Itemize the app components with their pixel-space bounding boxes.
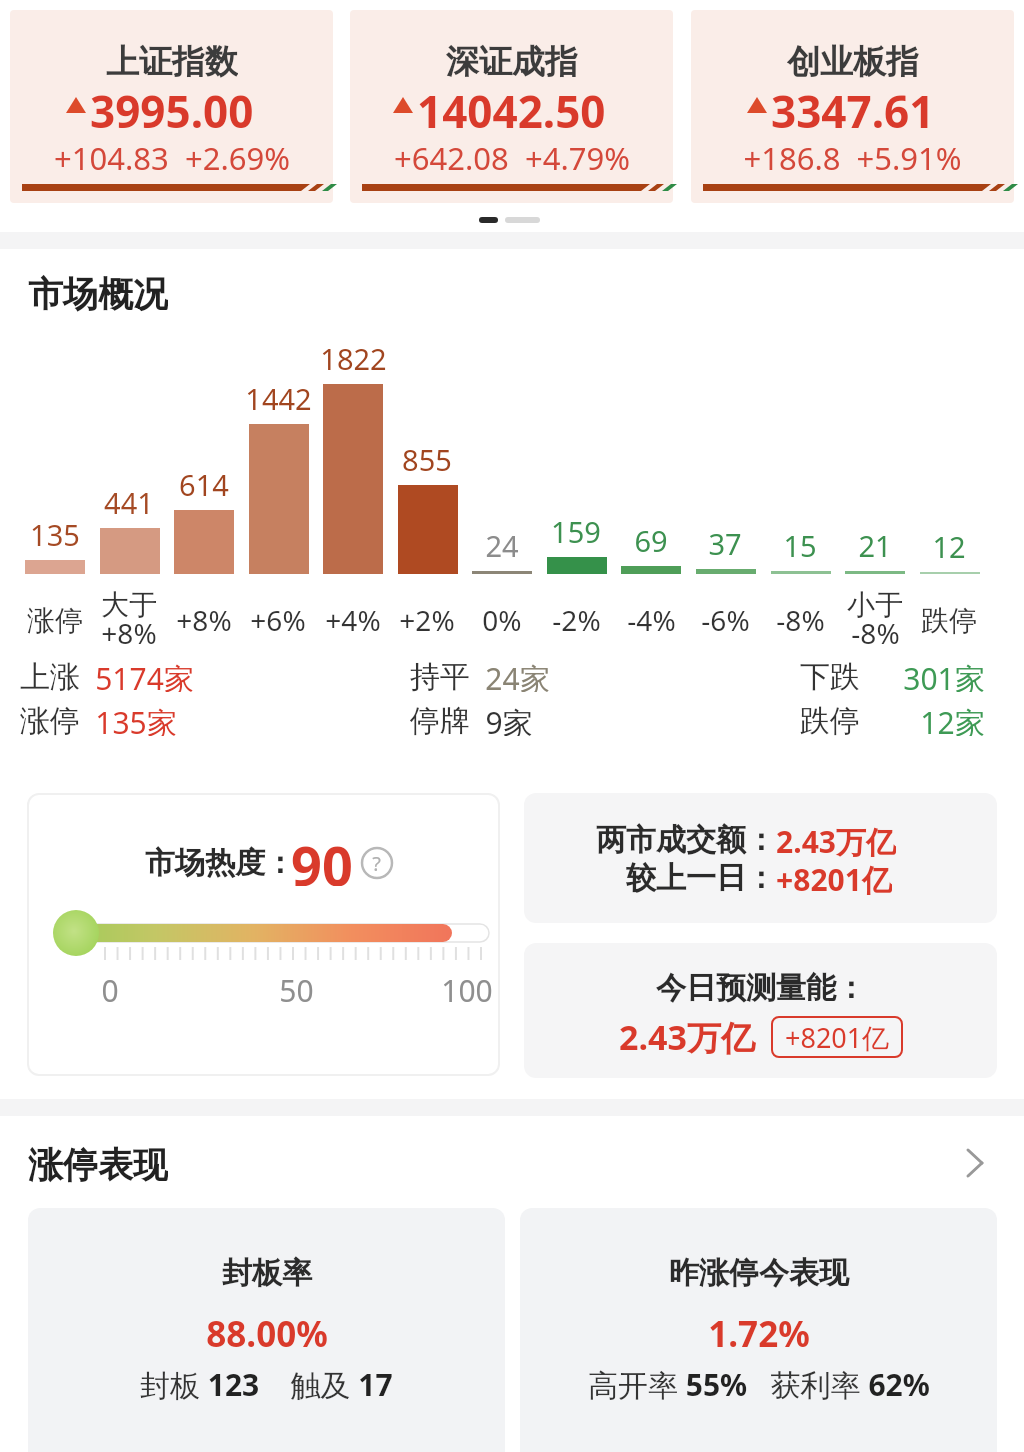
staticText: 1822 <box>320 339 387 375</box>
staticText: ? <box>372 850 381 877</box>
staticText: 市场概况 <box>28 272 168 312</box>
staticText: 封板率 <box>222 1254 312 1292</box>
button[interactable]: 深证成指 <box>350 10 673 203</box>
staticText: +186.8 +5.91% <box>743 137 962 173</box>
staticText: +104.83 +2.69% <box>54 137 290 173</box>
staticText: 159 <box>551 512 601 548</box>
staticText: 停牌 <box>410 702 470 736</box>
staticText: 涨停 <box>27 603 83 638</box>
staticText: 2.43万亿 <box>776 821 896 857</box>
staticText: 1442 <box>245 379 312 415</box>
button[interactable]: 创业板指 <box>691 10 1014 203</box>
staticText: 12 <box>932 527 966 563</box>
staticText: 0 <box>101 970 119 1006</box>
staticText: 创业板指 <box>787 41 919 81</box>
staticText: +8% <box>176 601 232 639</box>
staticText: 3347.61 <box>771 81 935 129</box>
button[interactable]: 市场热度： <box>27 793 500 1076</box>
staticText: -4% <box>627 601 676 639</box>
staticText: 涨停表现 <box>28 1143 168 1183</box>
staticText: 持平 <box>410 658 470 692</box>
staticText: 高开率 55% 获利率 62% <box>588 1364 930 1404</box>
staticText: +4% <box>325 601 381 639</box>
staticText: 135家 <box>95 702 177 736</box>
staticText: 24家 <box>485 658 550 692</box>
staticText: +8% <box>101 614 157 650</box>
staticText: -6% <box>701 601 750 639</box>
staticText: 14042.50 <box>417 81 606 129</box>
staticText: 135 <box>30 515 80 551</box>
staticText: 21 <box>858 526 892 562</box>
button[interactable] <box>962 1146 988 1180</box>
staticText: 2.43万亿 <box>619 1014 755 1060</box>
staticText: 441 <box>104 483 154 519</box>
staticText: 90 <box>291 828 353 886</box>
staticText: +642.08 +4.79% <box>394 137 630 173</box>
staticText: 50 <box>279 970 314 1006</box>
staticText: 两市成交额： <box>596 821 776 857</box>
staticText: +2% <box>399 601 455 639</box>
button[interactable]: 两市成交额： <box>524 793 997 923</box>
staticText: -8% <box>851 614 900 650</box>
staticText: 12家 <box>920 702 985 736</box>
staticText: 小于 <box>847 587 903 622</box>
staticText: 15 <box>783 526 817 562</box>
staticText: 0% <box>482 601 522 639</box>
staticText: 今日预测量能： <box>656 969 866 1007</box>
staticText: 跌停 <box>921 603 977 638</box>
staticText: 封板 123 触及 17 <box>140 1364 393 1404</box>
staticText: 9家 <box>485 702 533 736</box>
staticText: -8% <box>776 601 825 639</box>
staticText: +8201亿 <box>776 859 892 895</box>
staticText: 深证成指 <box>446 41 578 81</box>
button[interactable]: 封板率 <box>28 1208 505 1452</box>
staticText: 24 <box>485 526 519 562</box>
staticText: 跌停 <box>800 702 860 736</box>
staticText: 1.72% <box>708 1310 810 1354</box>
staticText: 5174家 <box>95 658 194 692</box>
staticText: +8201亿 <box>785 1019 890 1056</box>
staticText: +6% <box>250 601 306 639</box>
staticText: 市场热度： <box>145 844 295 882</box>
button[interactable]: 上证指数 <box>10 10 333 203</box>
staticText: 涨停 <box>20 702 80 736</box>
staticText: 88.00% <box>206 1310 328 1354</box>
staticText: 大于 <box>101 587 157 622</box>
staticText: 301家 <box>903 658 985 692</box>
staticText: 下跌 <box>800 658 860 692</box>
staticText: 614 <box>179 465 229 501</box>
staticText: 3995.00 <box>90 81 254 129</box>
button[interactable]: 昨涨停今表现 <box>520 1208 997 1452</box>
staticText: -2% <box>552 601 601 639</box>
staticText: 37 <box>708 524 742 560</box>
button[interactable]: 今日预测量能： <box>524 943 997 1078</box>
staticText: 上证指数 <box>106 41 238 81</box>
staticText: 855 <box>402 440 452 476</box>
staticText: 昨涨停今表现 <box>669 1254 849 1292</box>
staticText: 较上一日： <box>626 859 776 895</box>
staticText: 69 <box>634 521 668 557</box>
staticText: 上涨 <box>20 658 80 692</box>
staticText: 100 <box>441 970 493 1006</box>
